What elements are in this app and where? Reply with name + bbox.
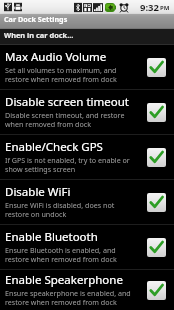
staticText: Enable/Check GPS — [5, 139, 103, 155]
staticText: Disable WiFi — [5, 184, 71, 200]
button[interactable]: Disable screen timeout — [0, 90, 174, 135]
staticText: Ensure WiFi is disabled, does not restor… — [5, 200, 115, 219]
staticText: Car Dock Settings — [4, 14, 68, 24]
staticText: 9:32 — [140, 1, 159, 14]
button[interactable]: Enable/Check GPS — [0, 135, 174, 180]
button[interactable]: Disable WiFi — [0, 180, 174, 225]
staticText: PM — [160, 4, 170, 12]
button[interactable]: Enable Speakerphone — [0, 270, 174, 310]
staticText: Max Audio Volume — [5, 49, 107, 65]
staticText: Enable Speakerphone — [5, 272, 123, 288]
staticText: Disable screen timeout — [5, 94, 130, 110]
staticText: Disable screen timeout, and restore when… — [5, 110, 125, 129]
staticText: If GPS is not enabled, try to enable or … — [5, 155, 130, 174]
button[interactable]: Max Audio Volume — [0, 45, 174, 90]
staticText: When in car dock... — [4, 30, 74, 40]
button[interactable]: Enable Bluetooth — [0, 225, 174, 270]
staticText: Ensure Bluetooth is enabled, and restore… — [5, 245, 117, 264]
staticText: Enable Bluetooth — [5, 229, 98, 245]
staticText: Set all volumes to maximum, and restore … — [5, 65, 117, 84]
staticText: Ensure speakerphone is enabled, and rest… — [5, 288, 131, 307]
